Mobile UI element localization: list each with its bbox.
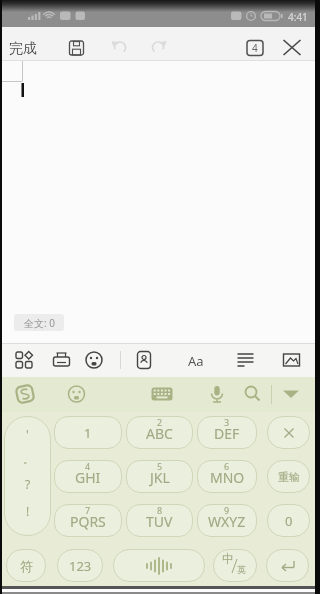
button[interactable] <box>242 35 268 61</box>
staticText: 4:41 <box>288 10 308 24</box>
button[interactable] <box>11 380 39 408</box>
button[interactable] <box>10 346 38 374</box>
button[interactable] <box>277 346 305 374</box>
staticText: 8 <box>157 504 163 516</box>
button[interactable] <box>80 346 108 374</box>
staticText: 4 <box>85 460 91 472</box>
staticText: 6 <box>224 460 230 472</box>
staticText: 重输 <box>278 470 300 484</box>
staticText: 123 <box>69 557 92 575</box>
staticText: 3 <box>224 416 230 428</box>
button[interactable] <box>239 380 267 408</box>
staticText: GHI <box>75 468 101 487</box>
staticText: JKL <box>150 468 170 487</box>
button[interactable] <box>145 35 171 61</box>
staticText: ABC <box>146 424 173 443</box>
staticText: 9 <box>224 504 230 516</box>
staticText: TUV <box>146 512 173 531</box>
staticText: MNO <box>210 468 245 487</box>
staticText: 5 <box>157 460 163 472</box>
button[interactable] <box>186 346 214 374</box>
staticText: 0 <box>285 512 293 530</box>
staticText: Aa <box>188 352 204 370</box>
button[interactable]: 中 <box>213 549 257 582</box>
button[interactable]: 完成 <box>9 40 37 58</box>
button[interactable] <box>130 346 158 374</box>
staticText: 完成 <box>9 40 37 58</box>
button[interactable]: 6 <box>197 460 257 493</box>
button[interactable] <box>107 35 133 61</box>
button[interactable]: 重输 <box>267 460 310 493</box>
button[interactable] <box>279 35 305 61</box>
staticText: 全文: 0 <box>24 316 55 330</box>
staticText: DEF <box>214 424 240 443</box>
button[interactable] <box>113 549 205 582</box>
button[interactable]: 2 <box>126 416 193 449</box>
staticText: ! <box>26 503 30 519</box>
button[interactable]: 123 <box>57 549 103 582</box>
button[interactable]: ' <box>4 416 51 536</box>
staticText: 中 <box>222 551 234 566</box>
button[interactable] <box>231 346 259 374</box>
button[interactable]: 7 <box>54 504 122 537</box>
button[interactable] <box>64 35 90 61</box>
button[interactable] <box>203 380 231 408</box>
button[interactable] <box>277 380 305 408</box>
button[interactable]: 9 <box>197 504 257 537</box>
staticText: ? <box>25 476 31 492</box>
button[interactable]: 1 <box>54 416 122 449</box>
staticText: WXYZ <box>208 512 246 531</box>
button[interactable]: 3 <box>197 416 257 449</box>
button[interactable] <box>148 380 176 408</box>
staticText: ' <box>26 426 29 442</box>
button[interactable]: 0 <box>267 504 310 537</box>
staticText: 7 <box>85 504 91 516</box>
staticText: 2 <box>157 416 163 428</box>
button[interactable] <box>48 346 76 374</box>
button[interactable]: 8 <box>126 504 193 537</box>
staticText: PQRS <box>70 512 106 531</box>
staticText: 符 <box>20 558 33 574</box>
staticText: 4 <box>252 41 258 55</box>
staticText: 1 <box>84 424 92 442</box>
staticText: 英 <box>237 564 246 575</box>
button[interactable] <box>267 416 310 449</box>
button[interactable]: 符 <box>6 549 46 582</box>
button[interactable] <box>62 380 90 408</box>
button[interactable]: 5 <box>126 460 193 493</box>
button[interactable]: 4 <box>54 460 122 493</box>
button[interactable] <box>266 549 309 582</box>
staticText: 。 <box>23 453 33 466</box>
